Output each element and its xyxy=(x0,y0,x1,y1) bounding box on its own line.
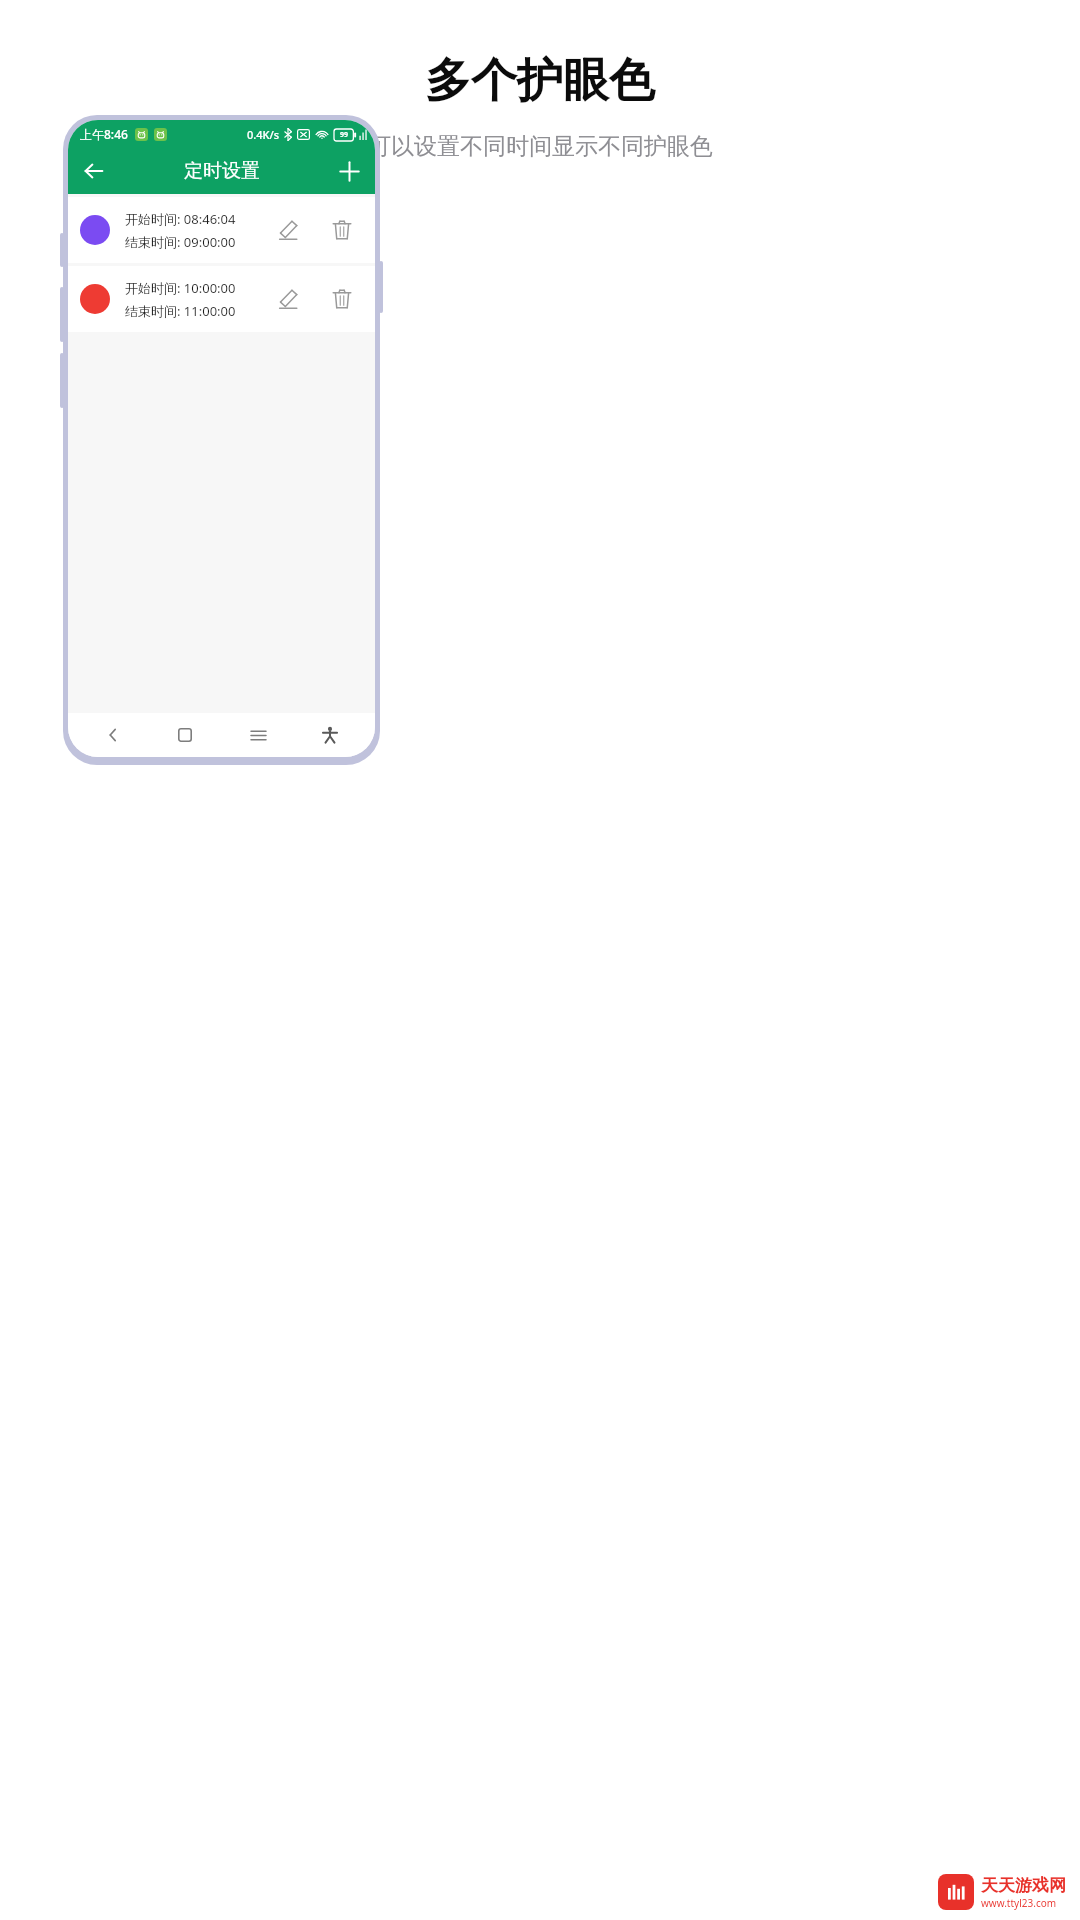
staticText: 开始时间: 10:00:00 xyxy=(125,279,236,297)
staticText: 多个护眼色 xyxy=(425,52,655,110)
button[interactable]: 返回 xyxy=(96,718,130,752)
button[interactable]: 开始时间: 08:46:04 xyxy=(68,197,375,263)
staticText: 定时设置 xyxy=(184,159,260,183)
button[interactable]: 开始时间: 10:00:00 xyxy=(68,266,375,332)
staticText: 天天游戏网 xyxy=(981,1875,1066,1896)
button[interactable]: 返回 xyxy=(74,151,114,191)
button[interactable]: 删除 xyxy=(321,278,363,320)
staticText: 上午8:46 xyxy=(80,126,128,142)
staticText: 0.4K/s xyxy=(247,127,280,142)
staticText: 可以设置不同时间显示不同护眼色 xyxy=(368,132,713,161)
button[interactable]: 删除 xyxy=(321,209,363,251)
button[interactable]: 无障碍 xyxy=(313,718,347,752)
button[interactable]: 编辑 xyxy=(267,278,309,320)
button[interactable]: 添加 xyxy=(329,151,369,191)
staticText: www.ttyl23.com xyxy=(981,1896,1057,1910)
button[interactable]: 编辑 xyxy=(267,209,309,251)
staticText: 99 xyxy=(340,130,349,140)
staticText: 结束时间: 11:00:00 xyxy=(125,302,236,320)
button[interactable]: 最近任务 xyxy=(241,718,275,752)
staticText: 结束时间: 09:00:00 xyxy=(125,233,236,251)
button[interactable]: 主页 xyxy=(168,718,202,752)
staticText: 开始时间: 08:46:04 xyxy=(125,210,236,228)
